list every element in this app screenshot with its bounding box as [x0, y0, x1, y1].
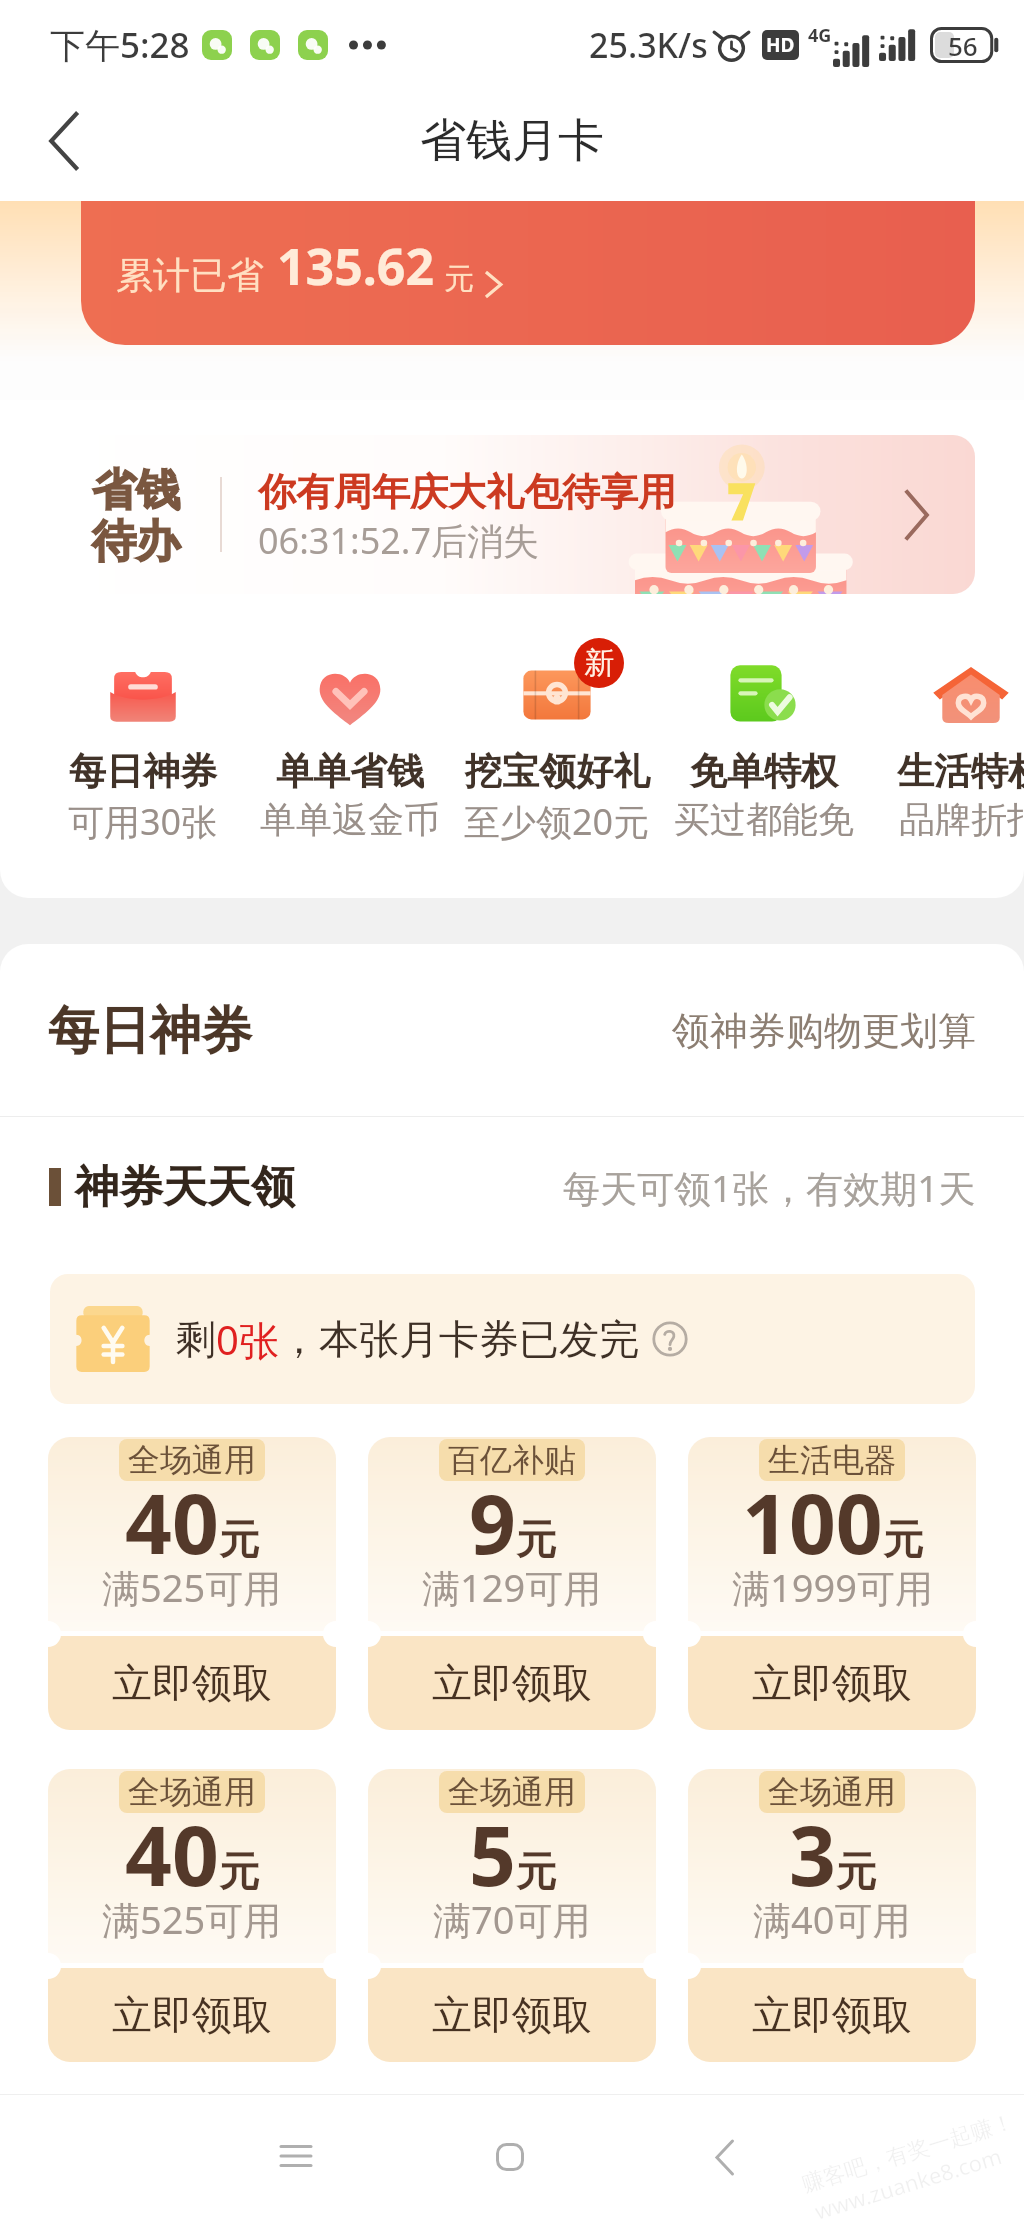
- staticText: www.zuanke8.com: [811, 2140, 1005, 2219]
- staticText: 省钱月卡: [420, 112, 604, 170]
- staticText: 单单省钱: [276, 748, 424, 795]
- staticText: 立即领取: [432, 1658, 592, 1708]
- button[interactable]: 全场通用: [48, 1769, 336, 2062]
- staticText: 生活电器: [768, 1440, 896, 1480]
- staticText: 百亿补贴: [448, 1440, 576, 1480]
- staticText: 0张: [216, 1312, 279, 1367]
- staticText: 全场通用: [128, 1440, 256, 1480]
- staticText: 全场通用: [448, 1772, 576, 1812]
- button[interactable]: 生活电器: [688, 1437, 976, 1730]
- button[interactable]: 全场通用: [368, 1769, 656, 2062]
- staticText: 神券天天领: [75, 1160, 295, 1215]
- staticText: 元: [516, 1846, 556, 1896]
- staticText: 立即领取: [112, 1990, 272, 2040]
- staticText: 40: [125, 1466, 219, 1578]
- staticText: 元: [516, 1514, 556, 1564]
- staticText: 56: [948, 28, 978, 63]
- button[interactable]: 每日神券: [0, 971, 1024, 1091]
- staticText: 9: [469, 1466, 516, 1578]
- staticText: 下午5:28: [50, 21, 190, 69]
- staticText: 元: [444, 260, 474, 298]
- staticText: 剩: [176, 1314, 216, 1364]
- staticText: 领神券购物更划算: [672, 1007, 976, 1055]
- button[interactable]: 全场通用: [688, 1769, 976, 2062]
- staticText: 满129可用: [422, 1561, 602, 1613]
- staticText: 4G: [808, 23, 832, 48]
- button[interactable]: 生活特权: [868, 652, 1024, 842]
- staticText: 元: [836, 1846, 876, 1896]
- staticText: 满40可用: [753, 1893, 911, 1945]
- button[interactable]: Back: [26, 103, 102, 179]
- button[interactable]: 累计已省: [81, 201, 975, 345]
- staticText: 满525可用: [102, 1893, 282, 1945]
- staticText: 立即领取: [432, 1990, 592, 2040]
- staticText: 100: [742, 1466, 883, 1578]
- staticText: 满70可用: [433, 1893, 591, 1945]
- staticText: 40: [125, 1798, 219, 1910]
- staticText: 累计已省: [116, 252, 264, 299]
- staticText: 新: [584, 644, 614, 682]
- staticText: 135.62: [277, 232, 435, 300]
- staticText: 可用30张: [68, 797, 218, 846]
- button[interactable]: 免单特权: [661, 652, 867, 842]
- button[interactable]: Back: [679, 2112, 769, 2202]
- staticText: 满1999可用: [732, 1561, 933, 1613]
- staticText: 省钱: [92, 463, 180, 518]
- staticText: 每日神券: [48, 999, 252, 1063]
- staticText: 5: [469, 1798, 516, 1910]
- button[interactable]: 每日神券: [40, 652, 246, 846]
- staticText: 生活特权: [897, 748, 1024, 795]
- button[interactable]: 全场通用: [48, 1437, 336, 1730]
- staticText: 25.3K/s: [589, 22, 708, 68]
- staticText: 元: [219, 1514, 259, 1564]
- staticText: 满525可用: [102, 1561, 282, 1613]
- staticText: 立即领取: [752, 1658, 912, 1708]
- staticText: 赚客吧，有奖一起赚！: [799, 2107, 1017, 2199]
- staticText: 每日神券: [69, 748, 217, 795]
- staticText: 挖宝领好礼: [465, 748, 650, 795]
- staticText: 品牌折扣: [899, 797, 1024, 842]
- staticText: 3: [789, 1798, 836, 1910]
- button[interactable]: 单单省钱: [247, 652, 453, 842]
- button[interactable]: 省钱: [50, 435, 975, 594]
- staticText: 买过都能免: [674, 797, 854, 842]
- staticText: 待办: [92, 514, 180, 569]
- button[interactable]: 剩: [50, 1274, 975, 1404]
- staticText: 全场通用: [768, 1772, 896, 1812]
- staticText: 你有周年庆大礼包待享用: [258, 468, 676, 516]
- staticText: 06:31:52.7后消失: [258, 516, 540, 565]
- button[interactable]: Home: [465, 2112, 555, 2202]
- button[interactable]: 新: [454, 652, 660, 846]
- staticText: 免单特权: [690, 748, 838, 795]
- staticText: 至少领20元: [464, 797, 650, 846]
- button[interactable]: Recent apps: [251, 2111, 341, 2201]
- staticText: 立即领取: [752, 1990, 912, 2040]
- staticText: 全场通用: [128, 1772, 256, 1812]
- staticText: 单单返金币: [260, 797, 440, 842]
- staticText: 元: [219, 1846, 259, 1896]
- staticText: ，本张月卡券已发完: [279, 1314, 639, 1364]
- staticText: 立即领取: [112, 1658, 272, 1708]
- staticText: 每天可领1张，有效期1天: [563, 1162, 976, 1213]
- staticText: 元: [883, 1514, 923, 1564]
- button[interactable]: 百亿补贴: [368, 1437, 656, 1730]
- staticText: HD: [766, 32, 795, 58]
